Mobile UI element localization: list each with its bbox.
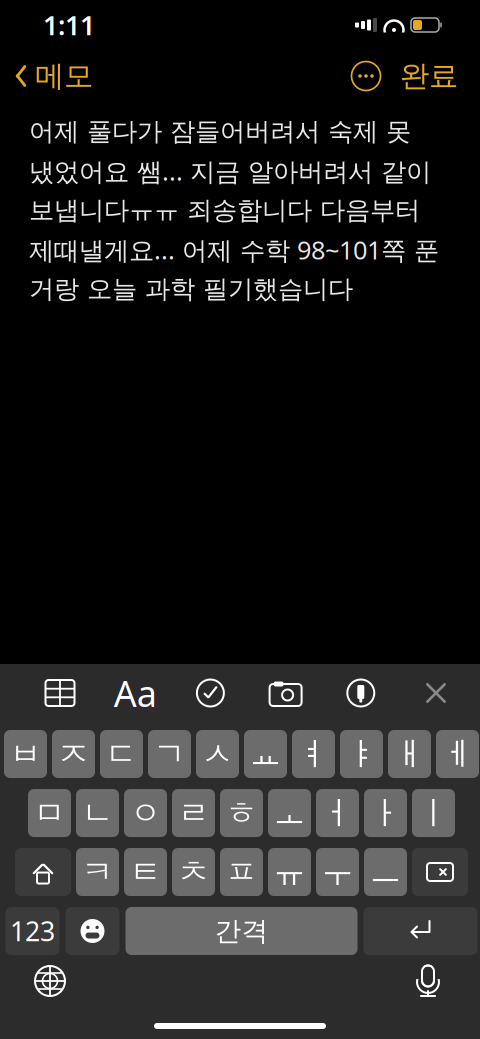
- button[interactable]: ㅍ: [220, 848, 263, 896]
- staticText: ㅔ: [441, 734, 473, 774]
- staticText: ㅓ: [321, 793, 353, 833]
- staticText: ㅛ: [249, 734, 281, 774]
- button[interactable]: ㄷ: [100, 730, 143, 778]
- button[interactable]: 완료: [386, 50, 472, 102]
- staticText: ㅌ: [129, 852, 161, 892]
- staticText: 메모: [35, 58, 93, 94]
- button[interactable]: 이모티콘: [65, 907, 119, 955]
- staticText: ㅁ: [33, 793, 65, 833]
- button[interactable]: ㅕ: [292, 730, 335, 778]
- staticText: ㅑ: [345, 734, 377, 774]
- button[interactable]: Shift: [15, 848, 71, 896]
- staticText: ㅕ: [297, 734, 329, 774]
- staticText: 123: [10, 913, 55, 949]
- staticText: ㅜ: [321, 852, 353, 892]
- staticText: ㅡ: [369, 852, 401, 892]
- staticText: 1:11: [43, 7, 95, 43]
- button[interactable]: ㅓ: [316, 789, 359, 837]
- button[interactable]: ㅋ: [76, 848, 119, 896]
- staticText: 어제 풀다가 잠들어버려서 숙제 못 냈었어요 쌤... 지금 알아버려서 같이…: [29, 116, 439, 305]
- staticText: ㄱ: [153, 734, 185, 774]
- button[interactable]: ㅐ: [388, 730, 431, 778]
- button[interactable]: ㅊ: [172, 848, 215, 896]
- button[interactable]: ㅂ: [4, 730, 47, 778]
- button[interactable]: ㄱ: [148, 730, 191, 778]
- staticText: ㅣ: [417, 793, 449, 833]
- button[interactable]: 표: [34, 670, 86, 716]
- button[interactable]: ㅑ: [340, 730, 383, 778]
- button[interactable]: ㅎ: [220, 789, 263, 837]
- button[interactable]: ㅅ: [196, 730, 239, 778]
- button[interactable]: ㅇ: [124, 789, 167, 837]
- staticText: ㄹ: [177, 793, 209, 833]
- button[interactable]: 체크리스트: [184, 670, 236, 716]
- button[interactable]: ㄹ: [172, 789, 215, 837]
- button[interactable]: 마크업: [335, 670, 387, 716]
- staticText: ㅗ: [273, 793, 305, 833]
- staticText: ㅊ: [177, 852, 209, 892]
- staticText: ㅈ: [57, 734, 89, 774]
- staticText: ㄴ: [81, 793, 113, 833]
- staticText: Aa: [114, 669, 157, 717]
- button[interactable]: ㅣ: [412, 789, 455, 837]
- button[interactable]: ㅠ: [268, 848, 311, 896]
- button[interactable]: 삭제: [412, 848, 468, 896]
- staticText: ㅋ: [81, 852, 113, 892]
- button[interactable]: 키보드 닫기: [410, 670, 462, 716]
- staticText: ㅇ: [129, 793, 161, 833]
- staticText: ㅏ: [369, 793, 401, 833]
- staticText: ㅅ: [201, 734, 233, 774]
- staticText: ㅐ: [393, 734, 425, 774]
- button[interactable]: ㅁ: [28, 789, 71, 837]
- button[interactable]: ㅜ: [316, 848, 359, 896]
- button[interactable]: ㄴ: [76, 789, 119, 837]
- button[interactable]: ㅏ: [364, 789, 407, 837]
- staticText: ㅠ: [273, 852, 305, 892]
- button[interactable]: ㅗ: [268, 789, 311, 837]
- button[interactable]: 줄바꿈: [363, 907, 477, 955]
- staticText: ㅎ: [225, 793, 257, 833]
- button[interactable]: 서식: [109, 670, 161, 716]
- button[interactable]: 카메라: [260, 670, 312, 716]
- button[interactable]: ㅌ: [124, 848, 167, 896]
- button[interactable]: ㅡ: [364, 848, 407, 896]
- staticText: 간격: [214, 915, 268, 947]
- staticText: ㅂ: [9, 734, 41, 774]
- staticText: ㅍ: [225, 852, 257, 892]
- button[interactable]: ㅈ: [52, 730, 95, 778]
- button[interactable]: ㅔ: [436, 730, 479, 778]
- button[interactable]: 더 보기: [346, 56, 386, 96]
- button[interactable]: 받아쓰기: [400, 959, 456, 1003]
- button[interactable]: 다음 키보드: [22, 959, 78, 1003]
- button[interactable]: 숫자: [5, 907, 59, 955]
- staticText: 완료: [400, 58, 458, 94]
- button[interactable]: 간격: [125, 907, 357, 955]
- button[interactable]: ㅛ: [244, 730, 287, 778]
- staticText: ㄷ: [105, 734, 137, 774]
- button[interactable]: 메모: [0, 50, 93, 102]
